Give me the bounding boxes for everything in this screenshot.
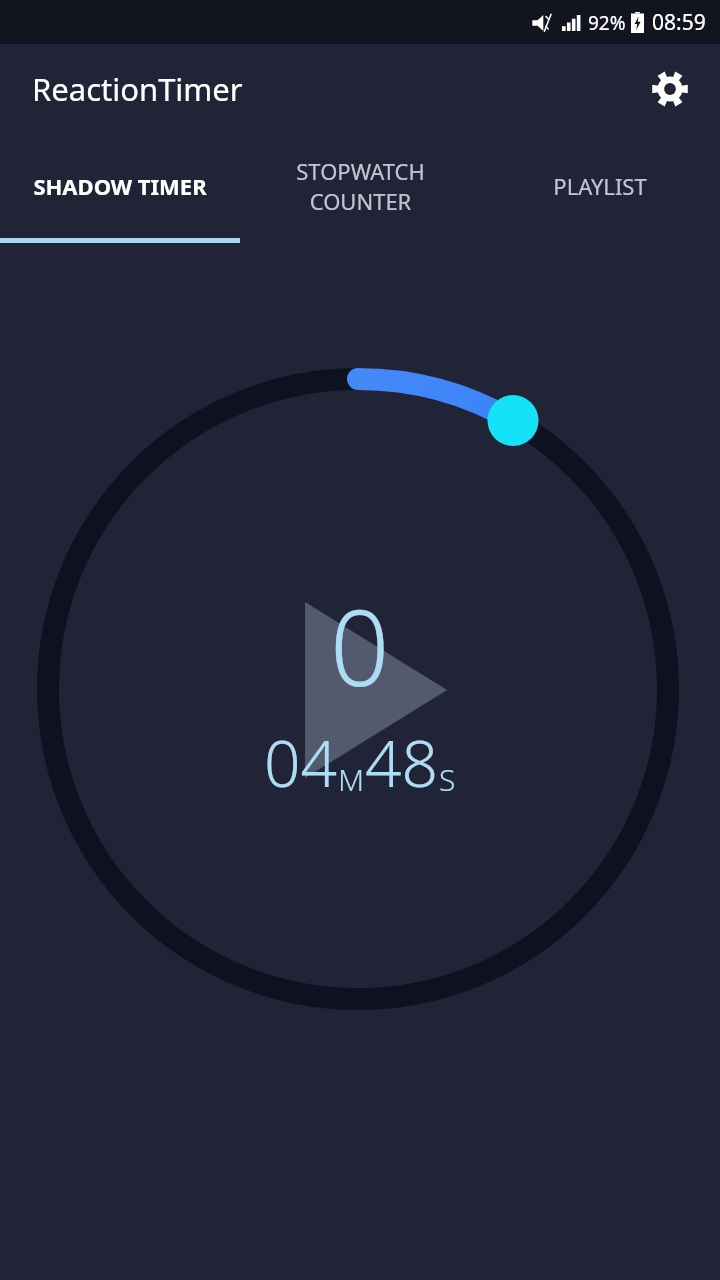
staticText: 48 (365, 719, 439, 806)
button[interactable]: SHADOW TIMER (0, 134, 240, 238)
staticText: M (338, 759, 365, 800)
button[interactable]: Settings (646, 65, 694, 113)
button[interactable]: STOPWATCH COUNTER (240, 134, 480, 238)
staticText: PLAYLIST (553, 171, 647, 201)
staticText: STOPWATCH COUNTER (296, 156, 425, 216)
button[interactable]: 0 (0, 575, 720, 806)
staticText: 92% (588, 10, 626, 36)
staticText: SHADOW TIMER (33, 171, 207, 201)
staticText: ReactionTimer (32, 68, 243, 110)
staticText: 04 (264, 719, 338, 806)
staticText: S (439, 759, 456, 800)
staticText: 08:59 (652, 8, 706, 37)
staticText: 0 (330, 575, 390, 717)
button[interactable]: PLAYLIST (480, 134, 720, 238)
